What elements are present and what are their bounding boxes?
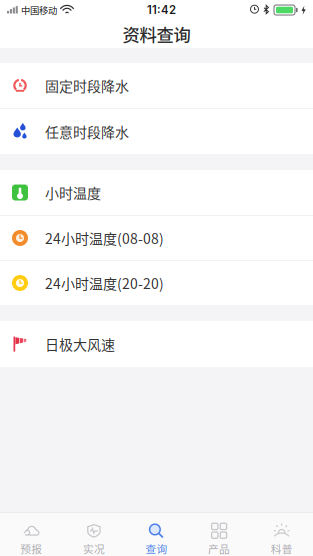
button[interactable]: 固定时段降水 (0, 63, 313, 109)
staticText: 任意时段降水 (45, 121, 129, 142)
staticText: 产品 (208, 541, 230, 556)
staticText: 查询 (145, 541, 167, 556)
button[interactable]: 产品 (188, 513, 250, 556)
staticText: 中国移动 (21, 3, 57, 17)
staticText: 小时温度 (45, 182, 101, 203)
staticText: 24小时温度(08-08) (45, 228, 164, 248)
button[interactable]: 24小时温度(08-08) (0, 216, 313, 261)
button[interactable]: 查询 (125, 513, 188, 556)
button[interactable]: 日极大风速 (0, 321, 313, 367)
button[interactable]: 科普 (250, 513, 313, 556)
button[interactable]: 预报 (0, 513, 63, 556)
button[interactable]: 24小时温度(20-20) (0, 261, 313, 305)
button[interactable]: 任意时段降水 (0, 109, 313, 154)
staticText: 实况 (83, 541, 105, 556)
staticText: 24小时温度(20-20) (45, 273, 164, 293)
button[interactable]: 实况 (63, 513, 125, 556)
staticText: 资料查询 (122, 21, 190, 47)
staticText: 11:42 (147, 3, 176, 17)
staticText: 预报 (20, 541, 42, 556)
staticText: 日极大风速 (45, 334, 115, 354)
button[interactable]: 小时温度 (0, 170, 313, 216)
staticText: 固定时段降水 (45, 75, 129, 96)
staticText: 科普 (271, 541, 293, 556)
